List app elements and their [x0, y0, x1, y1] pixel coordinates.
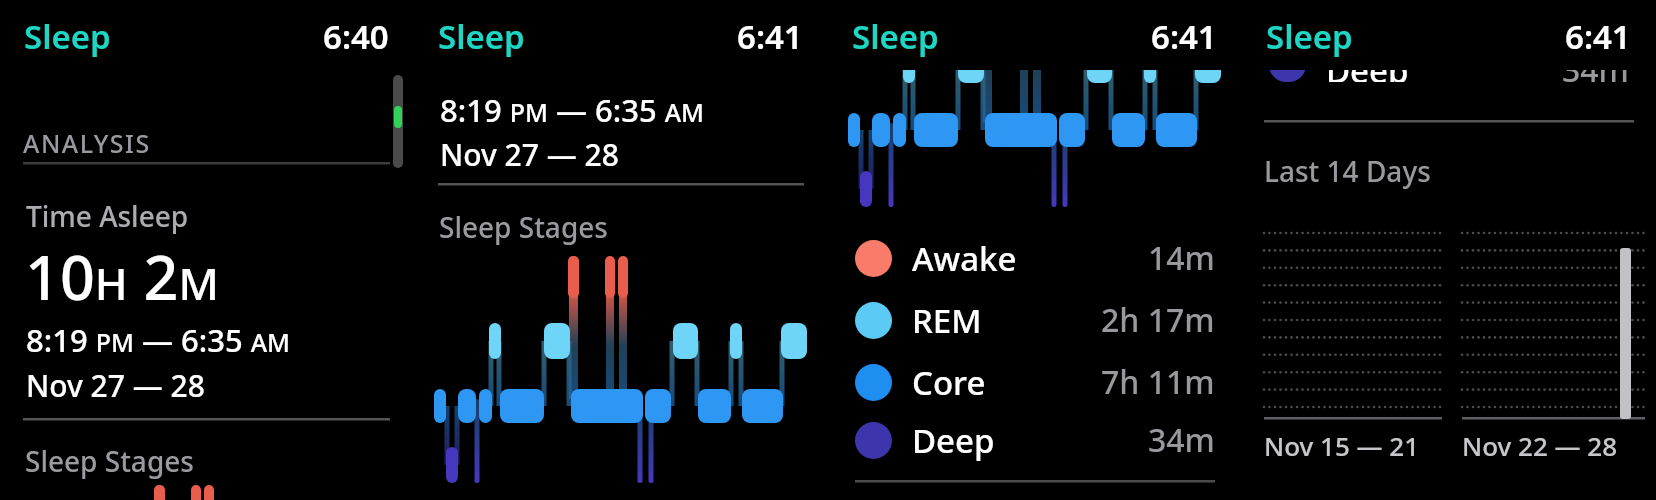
- staticText: 2h 17m: [1101, 298, 1215, 342]
- button[interactable]: Deep: [855, 412, 1215, 468]
- staticText: 6:41: [737, 14, 803, 59]
- staticText: Sleep Stages: [439, 208, 608, 246]
- staticText: 8:19 PM — 6:35 AM: [26, 319, 291, 361]
- staticText: Awake: [912, 236, 1017, 281]
- staticText: Nov 27 — 28: [440, 134, 619, 175]
- button[interactable]: Core: [855, 354, 1215, 410]
- staticText: 6:41: [1151, 14, 1217, 59]
- staticText: 34m: [1148, 418, 1215, 462]
- button[interactable]: Awake: [855, 230, 1215, 286]
- button[interactable]: REM: [855, 292, 1215, 348]
- staticText: REM: [912, 298, 982, 343]
- staticText: 14m: [1148, 236, 1215, 280]
- button[interactable]: Sleep: [852, 14, 939, 59]
- staticText: Sleep Stages: [25, 442, 194, 480]
- staticText: 34m: [1562, 70, 1629, 82]
- staticText: Nov 27 — 28: [26, 365, 205, 406]
- button[interactable]: Sleep: [24, 14, 111, 59]
- staticText: Nov 22 — 28: [1462, 428, 1618, 463]
- staticText: 10H 2M: [25, 235, 219, 318]
- staticText: 6:41: [1565, 14, 1631, 59]
- staticText: 8:19 PM — 6:35 AM: [440, 89, 705, 131]
- button[interactable]: Sleep: [1266, 14, 1353, 59]
- staticText: 6:40: [323, 14, 389, 59]
- button[interactable]: Sleep: [438, 14, 525, 59]
- staticText: 7h 11m: [1101, 360, 1215, 404]
- staticText: Nov 15 — 21: [1264, 428, 1420, 463]
- staticText: Deep: [912, 418, 995, 463]
- staticText: Deep: [1326, 70, 1409, 82]
- staticText: Core: [912, 360, 986, 405]
- staticText: Time Asleep: [26, 197, 189, 235]
- staticText: Last 14 Days: [1264, 152, 1431, 190]
- button[interactable]: ANALYSIS: [23, 126, 151, 160]
